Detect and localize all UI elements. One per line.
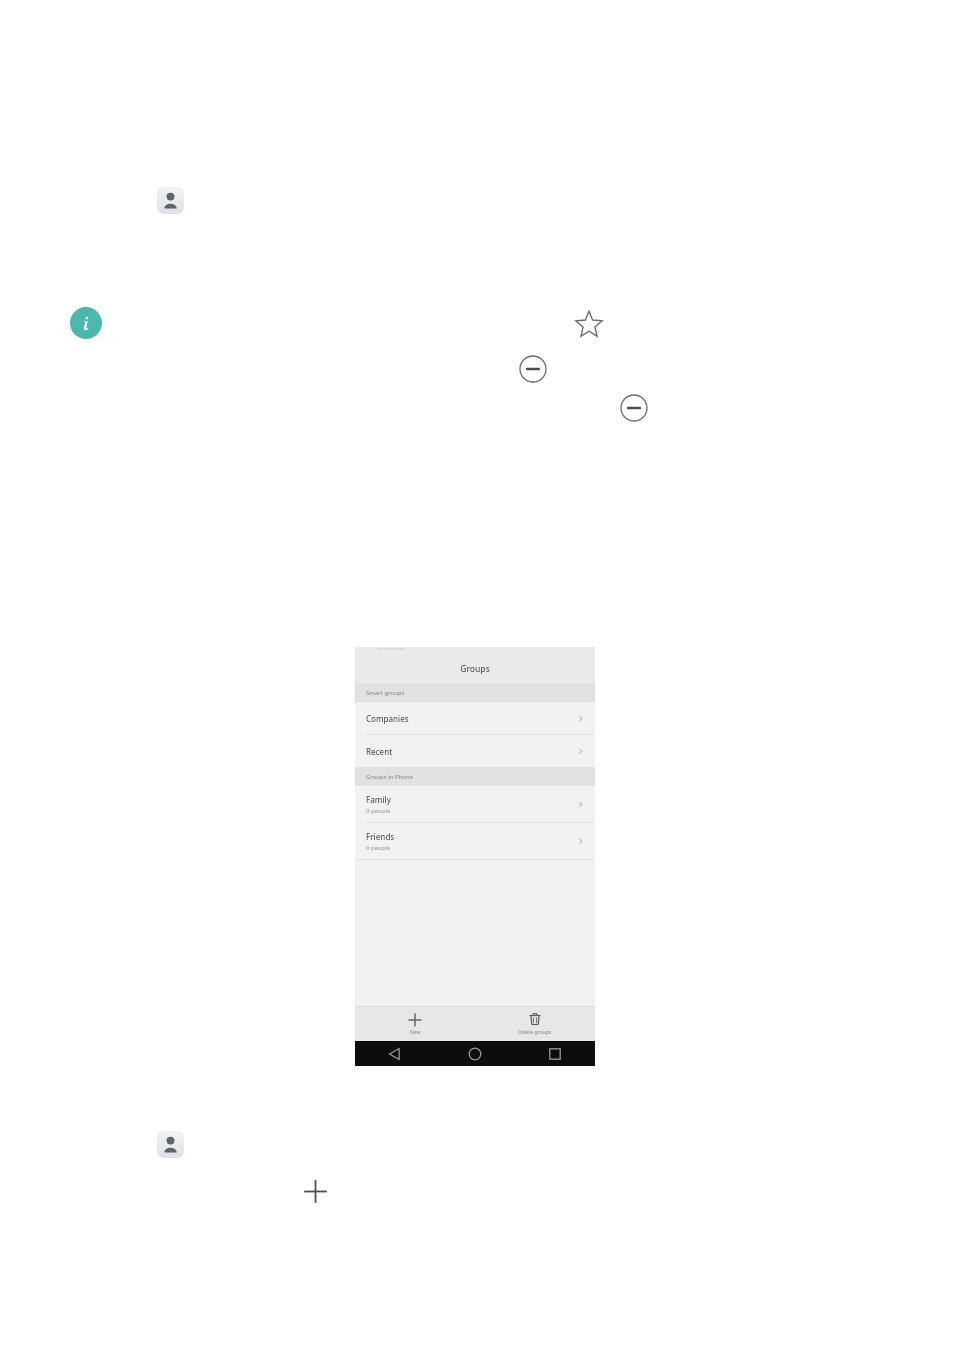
button[interactable]: Contacts	[157, 187, 184, 214]
staticText: i	[83, 312, 89, 335]
staticText: Recent	[366, 746, 393, 757]
staticText: Groups	[460, 663, 490, 675]
button[interactable]: Companies	[355, 702, 595, 734]
button[interactable]: Recents	[515, 1041, 595, 1066]
button[interactable]: Recent	[355, 735, 595, 767]
staticText: Smart groups	[366, 689, 405, 697]
staticText: Groups in Phone	[366, 773, 414, 781]
button[interactable]: Remove	[620, 394, 648, 422]
staticText: New	[410, 1029, 421, 1036]
button[interactable]: Info	[70, 307, 102, 339]
button[interactable]: Contacts	[157, 1131, 184, 1158]
staticText: Family	[366, 794, 391, 805]
button[interactable]: Delete groups	[475, 1007, 595, 1041]
button[interactable]: Friends	[355, 823, 595, 859]
button[interactable]: Favorite	[574, 309, 604, 339]
staticText: Friends	[366, 831, 395, 842]
button[interactable]: Add	[302, 1178, 329, 1205]
staticText: 0 people	[366, 807, 391, 815]
button[interactable]: Remove	[519, 355, 547, 383]
button[interactable]: New	[355, 1007, 475, 1041]
staticText: Companies	[366, 713, 409, 724]
button[interactable]: Family	[355, 786, 595, 822]
button[interactable]: Home	[435, 1041, 515, 1066]
button[interactable]: Back	[355, 1041, 435, 1066]
staticText: Delete groups	[518, 1029, 552, 1036]
staticText: 0 people	[366, 844, 391, 852]
